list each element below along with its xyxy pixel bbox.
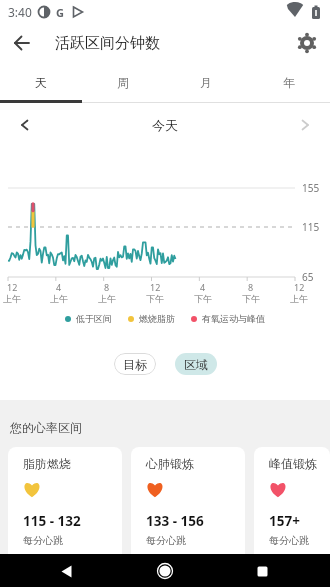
staticText: 今天 <box>152 117 178 133</box>
staticText: 有氧运动与峰值 <box>202 313 265 324</box>
staticText: 下午 <box>146 293 164 304</box>
staticText: 周 <box>117 75 129 90</box>
button[interactable] <box>151 557 179 585</box>
staticText: 4 <box>56 281 62 293</box>
staticText: 脂肪燃烧 <box>23 456 71 471</box>
staticText: 8 <box>248 281 254 293</box>
staticText: 115 - 132 <box>23 512 81 530</box>
button[interactable]: 区域 <box>175 353 217 375</box>
button[interactable]: 年 <box>247 62 330 103</box>
staticText: 月 <box>200 75 212 90</box>
staticText: 3:40 <box>8 4 32 20</box>
staticText: 每分心跳 <box>23 534 63 547</box>
button[interactable]: 心肺锻炼 <box>131 447 245 567</box>
button[interactable]: 峰值锻炼 <box>254 447 330 567</box>
staticText: 您的心率区间 <box>10 420 82 435</box>
staticText: 下午 <box>242 293 260 304</box>
button[interactable] <box>292 112 318 138</box>
staticText: 每分心跳 <box>269 534 309 547</box>
staticText: 目标 <box>123 357 147 372</box>
staticText: 115 <box>302 220 320 234</box>
staticText: 133 - 156 <box>146 512 204 530</box>
staticText: 燃烧脂肪 <box>139 313 175 324</box>
staticText: 4 <box>200 281 206 293</box>
button[interactable]: 天 <box>0 62 82 103</box>
staticText: 上午 <box>50 293 68 304</box>
staticText: G <box>56 5 64 20</box>
staticText: 天 <box>35 75 47 90</box>
button[interactable]: 脂肪燃烧 <box>8 447 122 567</box>
button[interactable]: 周 <box>82 62 164 103</box>
staticText: 下午 <box>194 293 212 304</box>
staticText: 上午 <box>98 293 116 304</box>
button[interactable]: 月 <box>164 62 247 103</box>
button[interactable] <box>248 557 276 585</box>
staticText: 65 <box>302 270 314 284</box>
staticText: 12 <box>294 281 305 293</box>
button[interactable] <box>52 557 80 585</box>
staticText: 峰值锻炼 <box>269 456 317 471</box>
staticText: 12 <box>7 281 18 293</box>
staticText: 低于区间 <box>76 313 112 324</box>
staticText: 心肺锻炼 <box>146 456 194 471</box>
staticText: 每分心跳 <box>146 534 186 547</box>
staticText: 年 <box>283 75 295 90</box>
staticText: 上午 <box>3 293 21 304</box>
button[interactable] <box>294 30 320 56</box>
staticText: 活跃区间分钟数 <box>55 34 160 53</box>
button[interactable]: 目标 <box>114 353 156 375</box>
button[interactable] <box>8 29 36 57</box>
staticText: 155 <box>302 181 320 195</box>
staticText: 上午 <box>290 293 308 304</box>
staticText: 12 <box>150 281 161 293</box>
staticText: 8 <box>104 281 110 293</box>
button[interactable] <box>12 112 38 138</box>
staticText: 157+ <box>269 512 300 530</box>
staticText: 区域 <box>184 357 208 372</box>
